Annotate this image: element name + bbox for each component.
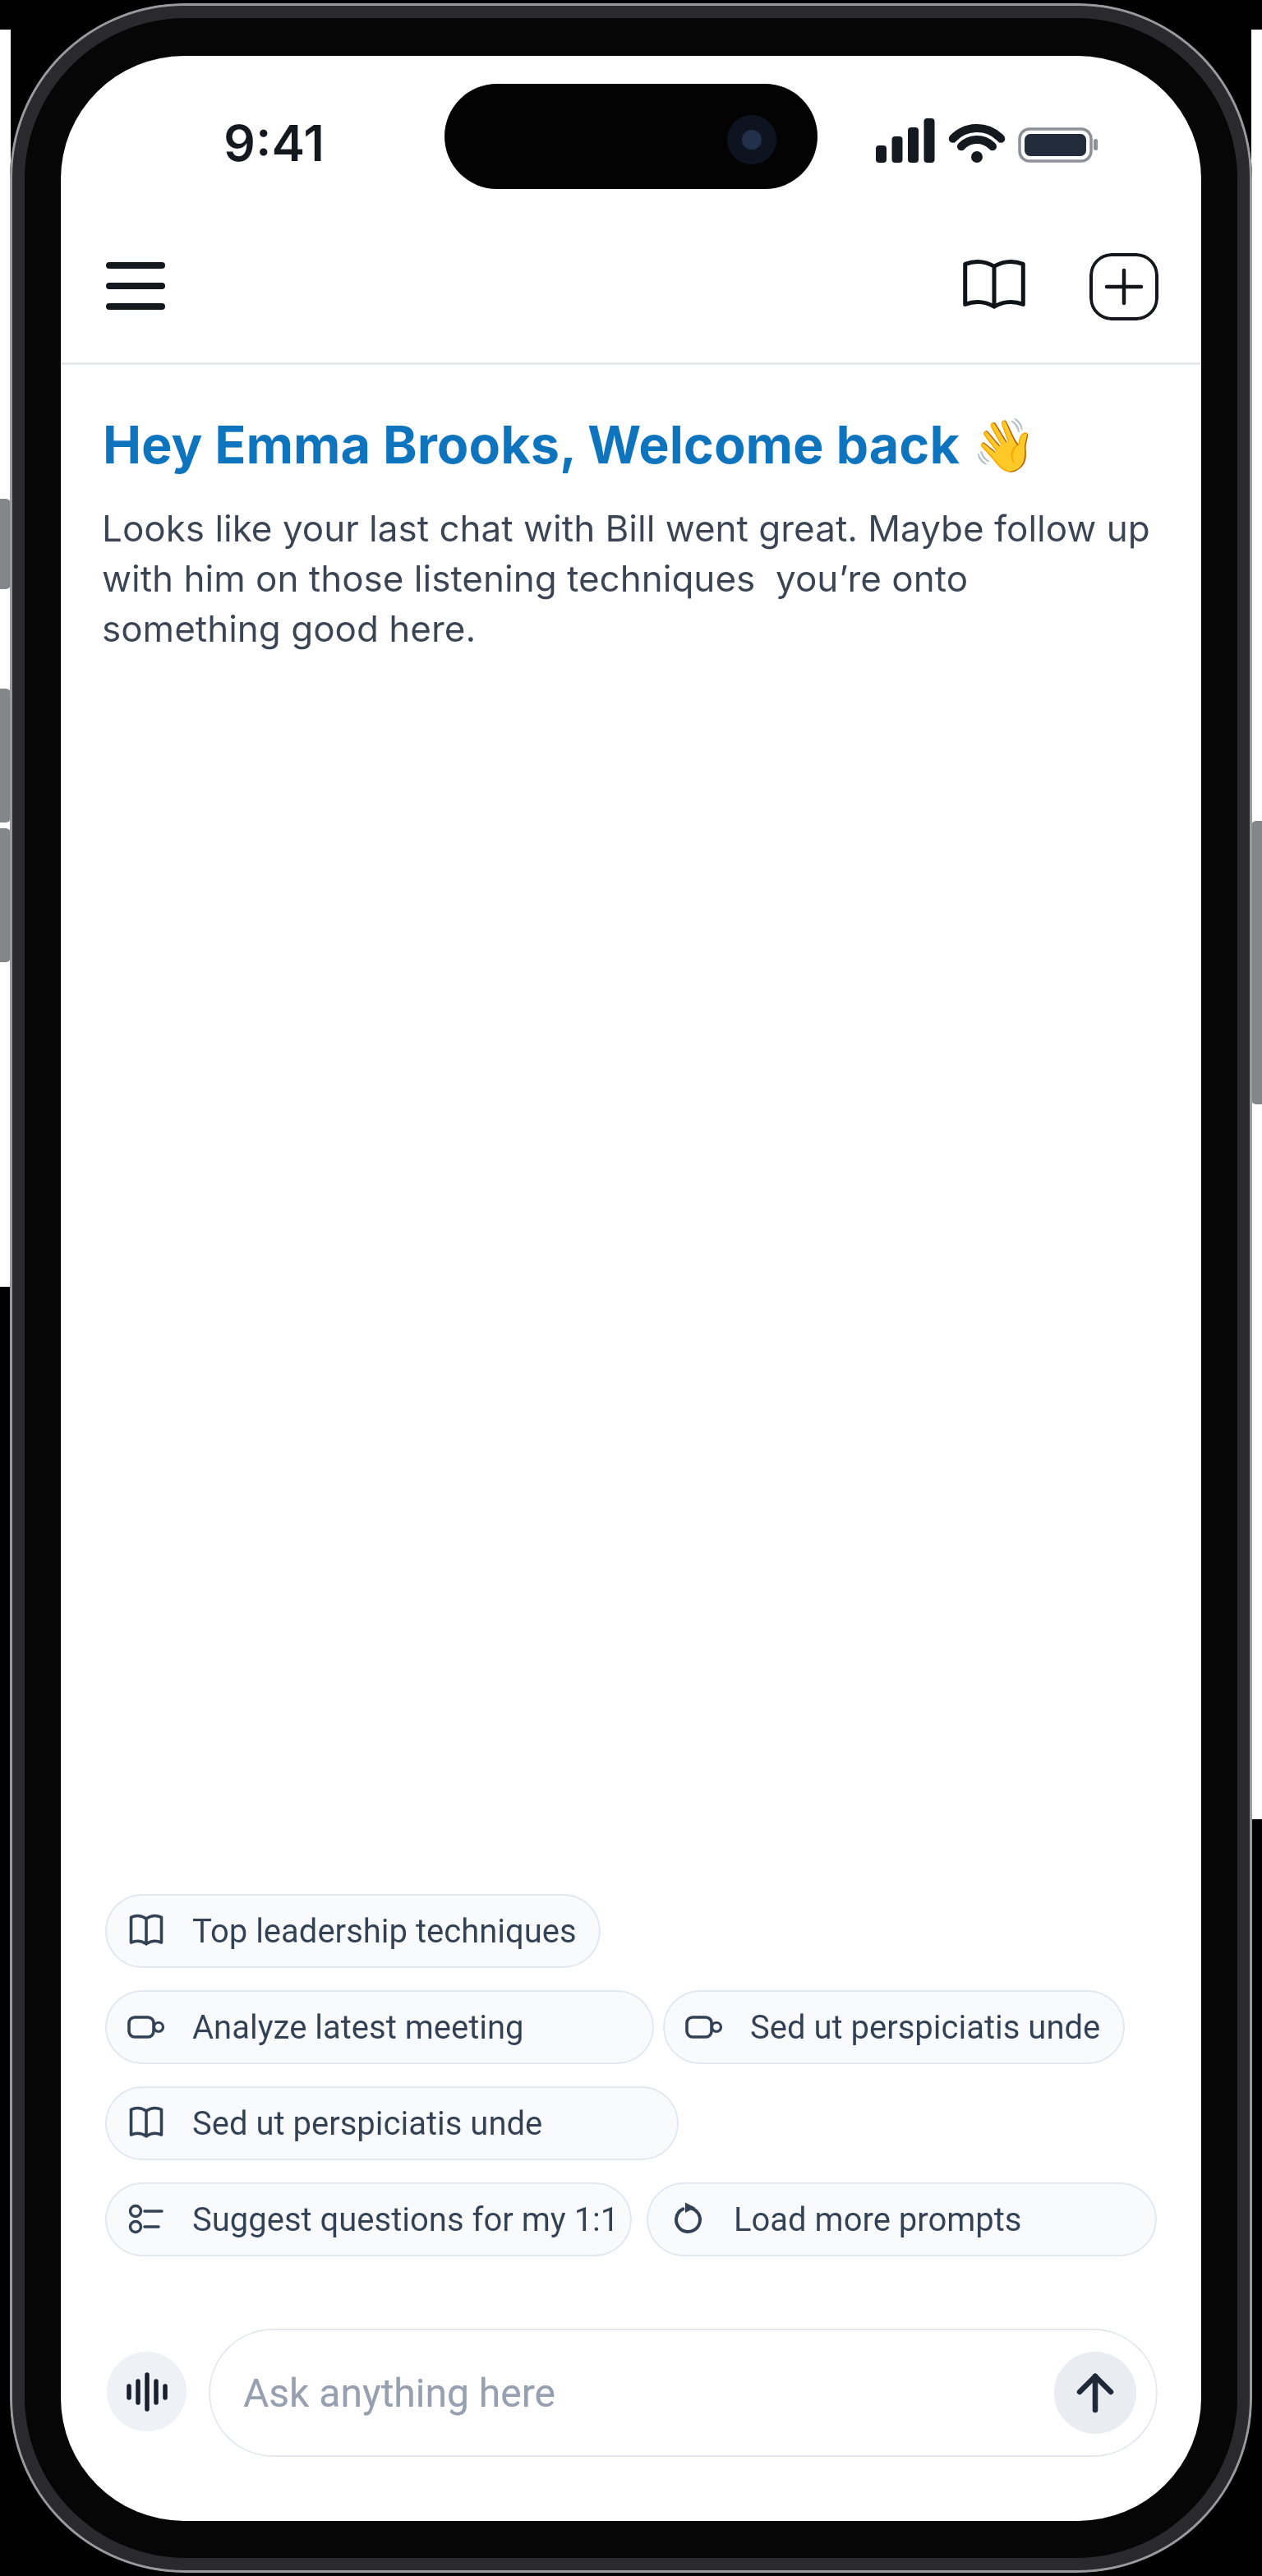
staticText: Suggest questions for my 1:1: [192, 2200, 619, 2239]
staticText: Load more prompts: [734, 2200, 1022, 2239]
button[interactable]: [1054, 2352, 1136, 2434]
button[interactable]: Ask anything here: [209, 2329, 1158, 2457]
button[interactable]: [942, 241, 1044, 331]
staticText: Looks like your last chat with Bill went…: [102, 506, 1150, 650]
button[interactable]: Analyze latest meeting: [105, 1990, 654, 2064]
button[interactable]: Suggest questions for my 1:1: [105, 2182, 632, 2256]
button[interactable]: Top leadership techniques: [105, 1894, 601, 1968]
button[interactable]: Load more prompts: [647, 2182, 1157, 2256]
staticText: Ask anything here: [243, 2370, 555, 2416]
button[interactable]: [92, 245, 182, 327]
button[interactable]: Sed ut perspiciatis unde: [105, 2086, 679, 2160]
staticText: Sed ut perspiciatis unde: [192, 2104, 543, 2143]
button[interactable]: [1089, 253, 1158, 320]
staticText: Hey Emma Brooks, Welcome back 👋: [103, 413, 1037, 476]
staticText: Sed ut perspiciatis unde: [750, 2008, 1101, 2047]
staticText: Analyze latest meeting: [192, 2008, 524, 2047]
staticText: 9:41: [223, 113, 325, 173]
staticText: Top leadership techniques: [192, 1912, 577, 1951]
button[interactable]: Sed ut perspiciatis unde: [663, 1990, 1125, 2064]
button[interactable]: [107, 2352, 187, 2431]
